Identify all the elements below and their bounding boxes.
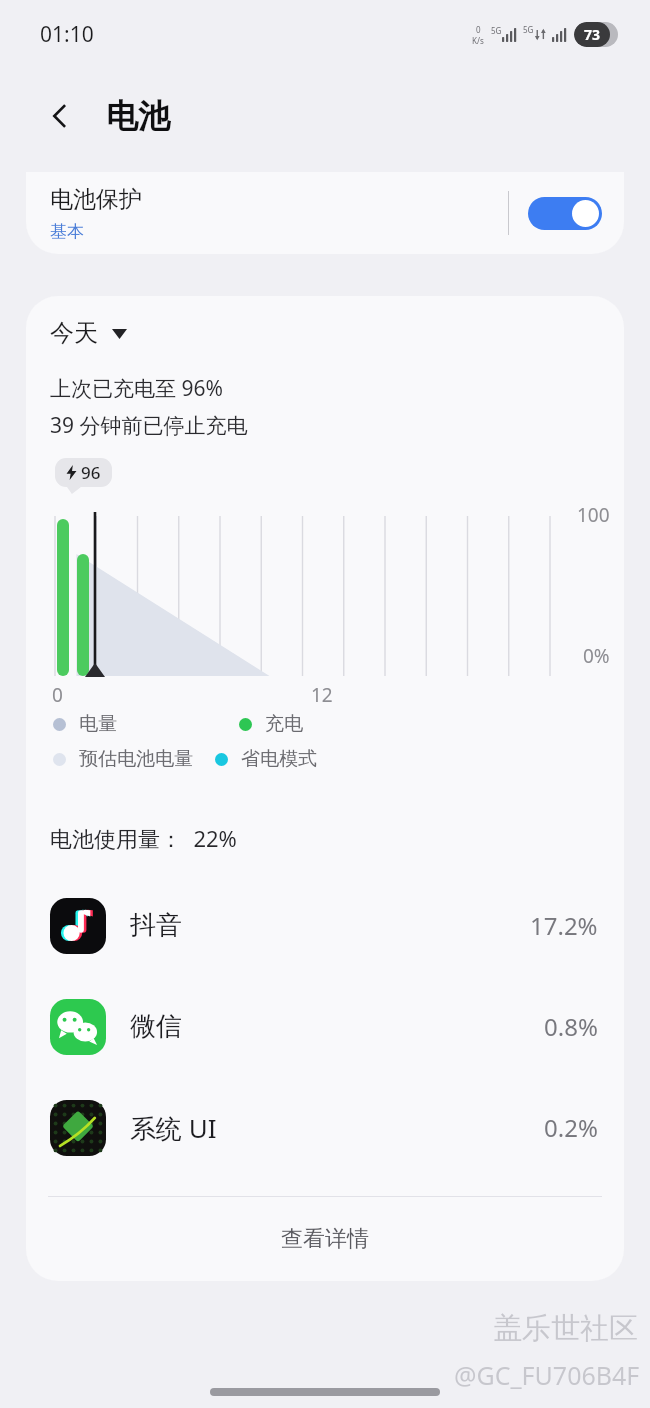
staticText: 0.2% <box>544 1111 598 1144</box>
staticText: 39 分钟前已停止充电 <box>50 411 248 440</box>
staticText: 12 <box>311 682 333 708</box>
staticText: 微信 <box>130 1010 544 1043</box>
button[interactable]: 微信 <box>26 976 624 1077</box>
staticText: 电池保护 <box>50 185 142 214</box>
staticText: 今天 <box>50 318 98 348</box>
staticText: 省电模式 <box>241 747 317 771</box>
staticText: 充电 <box>265 712 303 736</box>
staticText: 0 <box>52 682 63 708</box>
staticText: 0% <box>583 643 610 669</box>
button[interactable]: Back <box>34 90 86 142</box>
staticText: 电池使用量： 22% <box>50 823 237 853</box>
staticText: 抖音 <box>130 909 530 942</box>
staticText: 上次已充电至 96% <box>50 374 223 403</box>
button[interactable]: Battery protection toggle <box>528 197 624 230</box>
staticText: 电量 <box>79 712 117 736</box>
staticText: 预估电池电量 <box>79 747 193 771</box>
staticText: K/s <box>472 35 484 46</box>
button[interactable]: 查看详情 <box>26 1197 624 1281</box>
button[interactable]: 今天 <box>50 318 127 348</box>
staticText: 73 <box>584 25 601 44</box>
staticText: 0.8% <box>544 1010 598 1043</box>
staticText: 96 <box>81 461 101 484</box>
staticText: 100 <box>577 502 610 528</box>
staticText: 基本 <box>50 221 84 242</box>
staticText: 5G <box>523 24 534 35</box>
staticText: 系统 UI <box>130 1110 544 1146</box>
staticText: @GC_FU706B4F <box>454 1358 640 1392</box>
staticText: 盖乐世社区 <box>493 1310 638 1347</box>
staticText: 电池 <box>106 96 170 136</box>
button[interactable]: 抖音 <box>26 875 624 976</box>
button[interactable]: 系统 UI <box>26 1077 624 1178</box>
button[interactable]: 电池保护 <box>26 172 624 254</box>
staticText: 5G <box>491 25 502 36</box>
staticText: 查看详情 <box>281 1225 369 1253</box>
staticText: 0 <box>476 24 481 35</box>
staticText: 01:10 <box>40 20 94 49</box>
staticText: 17.2% <box>530 909 598 942</box>
